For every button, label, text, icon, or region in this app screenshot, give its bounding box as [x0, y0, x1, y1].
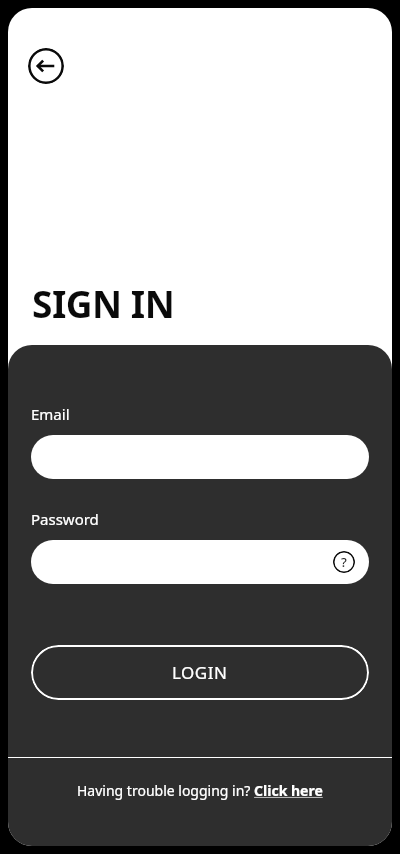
button[interactable]: Having trouble logging in? Click here: [77, 781, 323, 800]
staticText: SIGN IN: [32, 278, 175, 328]
staticText: Password: [31, 509, 99, 529]
staticText: LOGIN: [172, 661, 228, 684]
staticText: Email: [31, 404, 70, 424]
button[interactable]: Back: [28, 48, 64, 84]
button[interactable]: Password field: [31, 540, 369, 584]
staticText: ?: [341, 553, 347, 571]
button[interactable]: LOGIN: [31, 645, 369, 700]
button[interactable]: Password help: [333, 551, 355, 573]
button[interactable]: Email field: [31, 435, 369, 479]
staticText: Having trouble logging in? Click here: [77, 781, 323, 800]
